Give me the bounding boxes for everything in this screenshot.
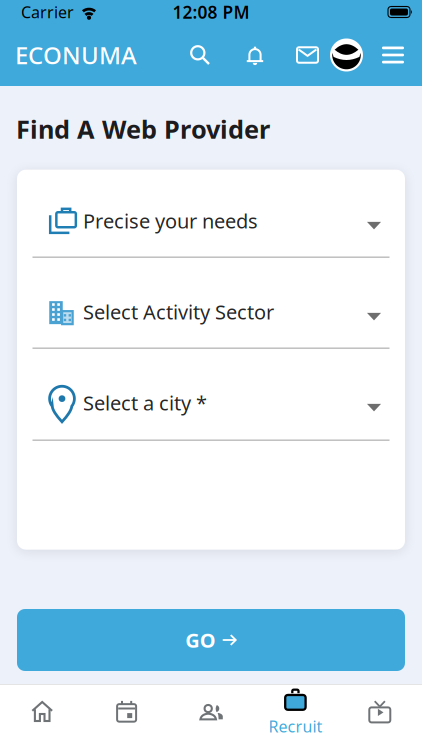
button[interactable]: Messages [266,47,318,63]
button[interactable]: Select Activity Sector [17,258,405,349]
button[interactable]: Search [189,44,211,66]
button[interactable]: Calendar [84,684,169,750]
button[interactable]: Menu [363,46,404,63]
button[interactable]: Live TV [338,684,422,750]
staticText: ECONUMA [15,39,137,71]
button[interactable]: Community [169,684,253,750]
staticText: GO [185,627,216,653]
button[interactable]: Select a city * [17,349,405,441]
button[interactable]: GO [17,609,405,671]
staticText: 12:08 PM [172,0,249,23]
button[interactable]: Notifications [211,44,266,65]
staticText: Precise your needs [83,207,258,234]
staticText: Carrier [21,1,74,23]
button[interactable]: Home [0,684,84,750]
staticText: Select a city * [83,389,207,416]
button[interactable]: Profile [318,38,363,71]
button[interactable]: Recruit [253,684,338,750]
button[interactable]: Precise your needs [17,170,405,258]
staticText: Select Activity Sector [83,298,274,325]
staticText: Recruit [268,716,322,737]
staticText: Find A Web Provider [16,112,270,146]
